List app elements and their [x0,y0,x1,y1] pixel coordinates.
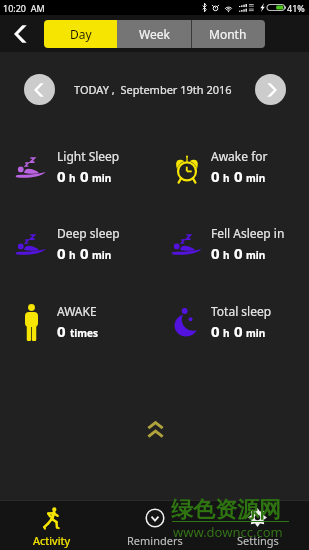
button[interactable]: Month [191,20,265,48]
staticText: 0 [57,321,66,341]
staticText: min [92,171,112,185]
button[interactable]: Light Sleep [9,147,143,187]
staticText: h [69,248,76,262]
staticText: 41% [287,2,305,14]
button[interactable]: Back [0,15,40,52]
staticText: min [246,326,266,340]
staticText: Activity [33,533,71,548]
staticText: www.downcc.com [173,523,283,541]
staticText: AWAKE [57,303,97,319]
staticText: min [92,248,112,262]
button[interactable]: Awake for [165,147,299,187]
staticText: Settings [237,533,279,548]
button[interactable]: Day [44,20,117,48]
staticText: times [70,326,99,340]
staticText: h [223,326,230,340]
staticText: h [223,248,230,262]
button[interactable]: Activity [0,501,103,550]
staticText: Total sleep [211,303,272,319]
staticText: 0 [234,166,243,186]
staticText: 10:20 AM [3,2,45,14]
staticText: Day [70,26,92,42]
staticText: 0 [80,166,89,186]
staticText: 0 [234,243,243,263]
staticText: Fell Asleep in [211,225,285,241]
staticText: 绿色资源网 [171,496,281,524]
staticText: min [246,171,266,185]
staticText: Month [209,26,247,42]
staticText: TODAY , September 19th 2016 [74,82,232,97]
staticText: h [223,171,230,185]
button[interactable]: Settings [206,501,309,550]
staticText: 0 [57,166,66,186]
button[interactable]: AWAKE [9,302,143,342]
button[interactable]: Deep sleep [9,224,143,264]
staticText: Week [139,26,170,42]
staticText: min [246,248,266,262]
staticText: Awake for [211,148,268,164]
button[interactable]: Fell Asleep in [165,224,299,264]
staticText: 0 [234,321,243,341]
staticText: 0 [211,243,220,263]
staticText: 0 [211,166,220,186]
staticText: Reminders [127,533,183,548]
button[interactable]: Reminders [103,501,206,550]
button[interactable]: Next day [255,74,286,105]
staticText: Light Sleep [57,148,120,164]
staticText: 0 [211,321,220,341]
staticText: 0 [80,243,89,263]
staticText: 0 [57,243,66,263]
button[interactable]: Expand [138,417,172,443]
staticText: Deep sleep [57,225,120,241]
staticText: h [69,171,76,185]
button[interactable]: Week [117,20,191,48]
button[interactable]: Total sleep [165,302,299,342]
button[interactable]: Previous day [24,74,55,105]
